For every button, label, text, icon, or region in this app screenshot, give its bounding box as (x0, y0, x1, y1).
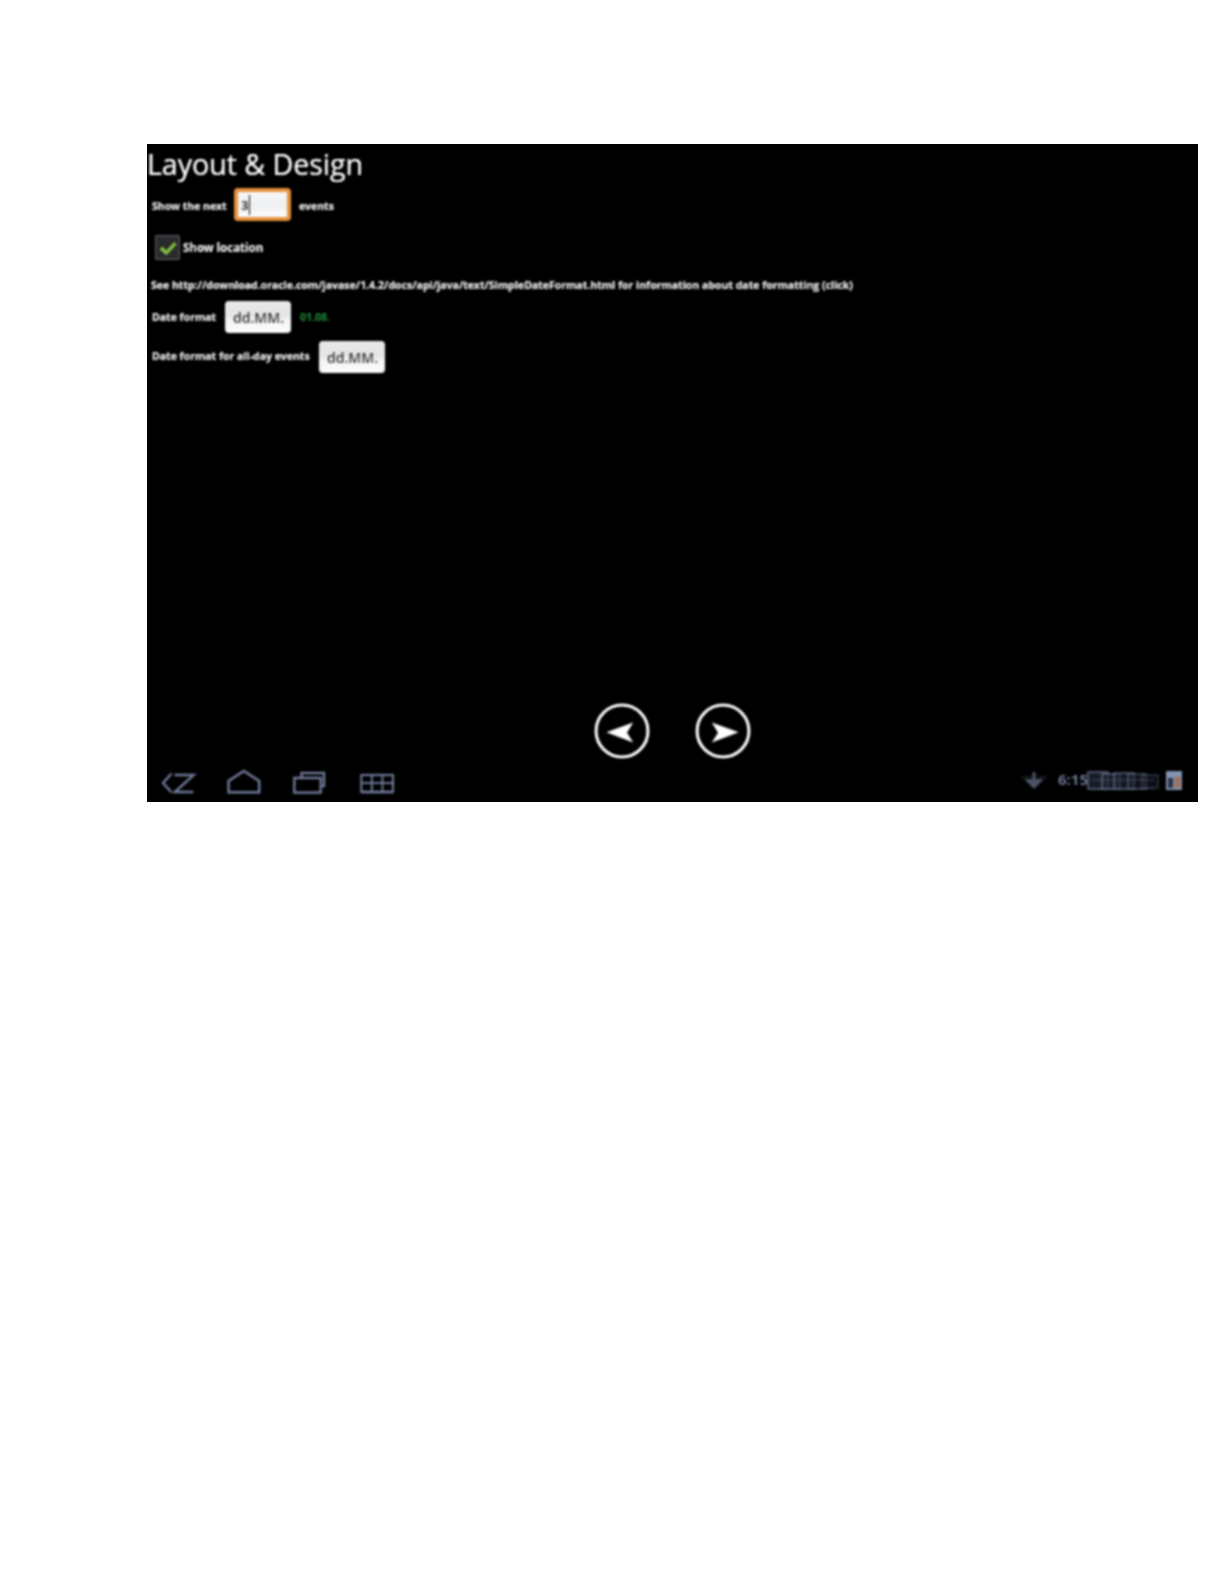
staticText: dd.MM. (327, 348, 378, 367)
button[interactable]: dd.MM. (319, 341, 385, 373)
button[interactable]: Previous (594, 703, 650, 759)
staticText: dd.MM. (233, 308, 284, 327)
staticText: 3 (241, 196, 249, 214)
staticText: Show the next (152, 199, 227, 213)
staticText: Date format for all-day events (152, 349, 310, 363)
button[interactable]: Back (160, 768, 196, 796)
staticText: Date format (152, 310, 217, 324)
button[interactable]: 3 (238, 192, 287, 217)
button[interactable]: Home (224, 768, 264, 796)
button[interactable]: Show location (155, 235, 264, 260)
button[interactable]: Keyboard (357, 768, 395, 796)
button[interactable]: Recent apps (290, 768, 328, 796)
button[interactable]: Next (695, 703, 751, 759)
staticText: Layout & Design (147, 145, 364, 184)
staticText: 6:15 (1058, 769, 1088, 789)
button[interactable]: See http://download.oracle.com/javase/1.… (151, 278, 853, 292)
staticText: Show location (183, 240, 264, 256)
button[interactable]: dd.MM. (225, 301, 291, 333)
staticText: 01.08. (300, 310, 330, 324)
staticText: events (299, 199, 334, 213)
staticText: See http://download.oracle.com/javase/1.… (151, 278, 853, 292)
